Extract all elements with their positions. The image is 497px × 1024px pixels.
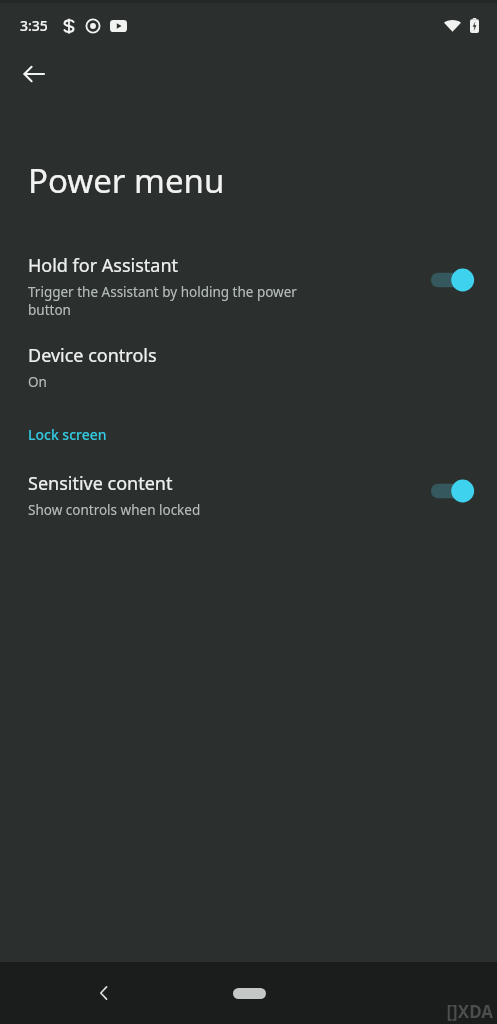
button[interactable]: Toggle	[429, 478, 477, 504]
staticText: Device controls	[28, 343, 157, 368]
staticText: Lock screen	[28, 425, 107, 444]
button[interactable]: Hold for Assistant	[0, 253, 497, 319]
staticText: []XDA	[446, 1000, 493, 1023]
staticText: Hold for Assistant	[28, 253, 179, 278]
button[interactable]: Back	[82, 971, 126, 1015]
staticText: On	[28, 373, 47, 391]
button[interactable]: Home	[219, 975, 279, 1011]
staticText: Sensitive content	[28, 471, 173, 496]
staticText: Trigger the Assistant by holding the pow…	[28, 283, 297, 319]
staticText: 3:35	[20, 16, 48, 35]
button[interactable]: Device controls	[0, 343, 497, 391]
button[interactable]: Sensitive content	[0, 471, 497, 519]
button[interactable]: Back	[10, 50, 58, 98]
button[interactable]: Toggle	[429, 267, 477, 293]
staticText: Power menu	[28, 158, 225, 203]
staticText: Show controls when locked	[28, 501, 201, 519]
